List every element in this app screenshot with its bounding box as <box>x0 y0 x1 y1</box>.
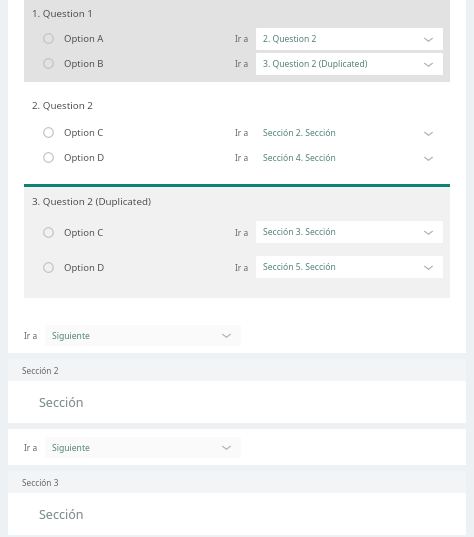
button[interactable]: Sección 3. Sección <box>256 221 443 243</box>
other: Expand <box>422 58 435 71</box>
staticText: Sección 2 <box>22 365 59 376</box>
other: Expand <box>422 226 435 239</box>
staticText: Ir a <box>24 330 38 341</box>
staticText: Siguiente <box>52 442 90 454</box>
other: Expand <box>220 441 233 454</box>
button[interactable]: Siguiente <box>45 325 241 346</box>
staticText: 2. Question 2 <box>32 99 93 112</box>
other: Expand <box>422 152 435 165</box>
staticText: Ir a <box>235 33 249 44</box>
staticText: Sección <box>39 506 84 523</box>
other: Expand <box>422 261 435 274</box>
staticText: Sección 3 <box>22 477 59 488</box>
staticText: 1. Question 1 <box>32 7 93 20</box>
staticText: Ir a <box>235 262 249 273</box>
button[interactable]: Option D <box>24 145 450 170</box>
button[interactable]: Sección 2. Sección <box>256 122 443 144</box>
staticText: Option A <box>64 32 104 45</box>
button[interactable]: Sección 3 <box>8 471 466 493</box>
staticText: Option B <box>64 57 104 70</box>
staticText: Option C <box>64 126 104 139</box>
staticText: Ir a <box>235 227 249 238</box>
other: Expand <box>422 33 435 46</box>
button[interactable]: Sección 5. Sección <box>256 256 443 278</box>
staticText: Sección 5. Sección <box>263 261 336 273</box>
button[interactable]: Option D <box>24 254 450 280</box>
button[interactable]: Ir a <box>8 432 466 462</box>
button[interactable]: Option A <box>24 26 450 51</box>
button[interactable]: 3. Question 2 (Duplicated) <box>256 53 443 75</box>
staticText: 3. Question 2 (Duplicated) <box>32 195 151 208</box>
button[interactable]: Sección 4. Sección <box>256 147 443 169</box>
staticText: Ir a <box>24 442 38 453</box>
other: Expand <box>422 127 435 140</box>
button[interactable]: Option C <box>24 219 450 245</box>
staticText: Option D <box>64 261 105 274</box>
button[interactable]: Sección 2 <box>8 359 466 381</box>
staticText: Option C <box>64 226 104 239</box>
staticText: Ir a <box>235 127 249 138</box>
staticText: Ir a <box>235 58 249 69</box>
staticText: Sección 2. Sección <box>263 127 336 139</box>
button[interactable]: 2. Question 2 <box>256 28 443 50</box>
staticText: 2. Question 2 <box>263 33 317 45</box>
other: Expand <box>220 329 233 342</box>
staticText: 3. Question 2 (Duplicated) <box>263 58 368 70</box>
button[interactable]: Option B <box>24 51 450 76</box>
staticText: Option D <box>64 151 105 164</box>
staticText: Ir a <box>235 152 249 163</box>
staticText: Sección 4. Sección <box>263 152 336 164</box>
button[interactable]: Option C <box>24 120 450 145</box>
staticText: Sección <box>39 394 84 411</box>
staticText: Sección 3. Sección <box>263 226 336 238</box>
button[interactable]: Ir a <box>8 320 466 350</box>
staticText: Siguiente <box>52 330 90 342</box>
button[interactable]: Siguiente <box>45 437 241 458</box>
